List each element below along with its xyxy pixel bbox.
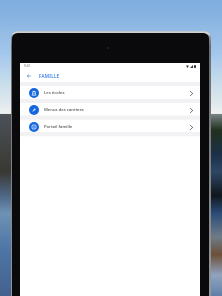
button[interactable]: Back xyxy=(23,70,34,81)
staticText: Portail famille xyxy=(44,124,73,130)
button[interactable]: Menus des cantines xyxy=(20,103,200,116)
staticText: 9:41 xyxy=(24,64,31,68)
staticText: Menus des cantines xyxy=(44,107,84,113)
staticText: FAMILLE xyxy=(39,73,60,79)
button[interactable]: Les écoles xyxy=(20,86,200,99)
button[interactable]: Portail famille xyxy=(20,120,200,133)
staticText: Les écoles xyxy=(44,90,65,96)
